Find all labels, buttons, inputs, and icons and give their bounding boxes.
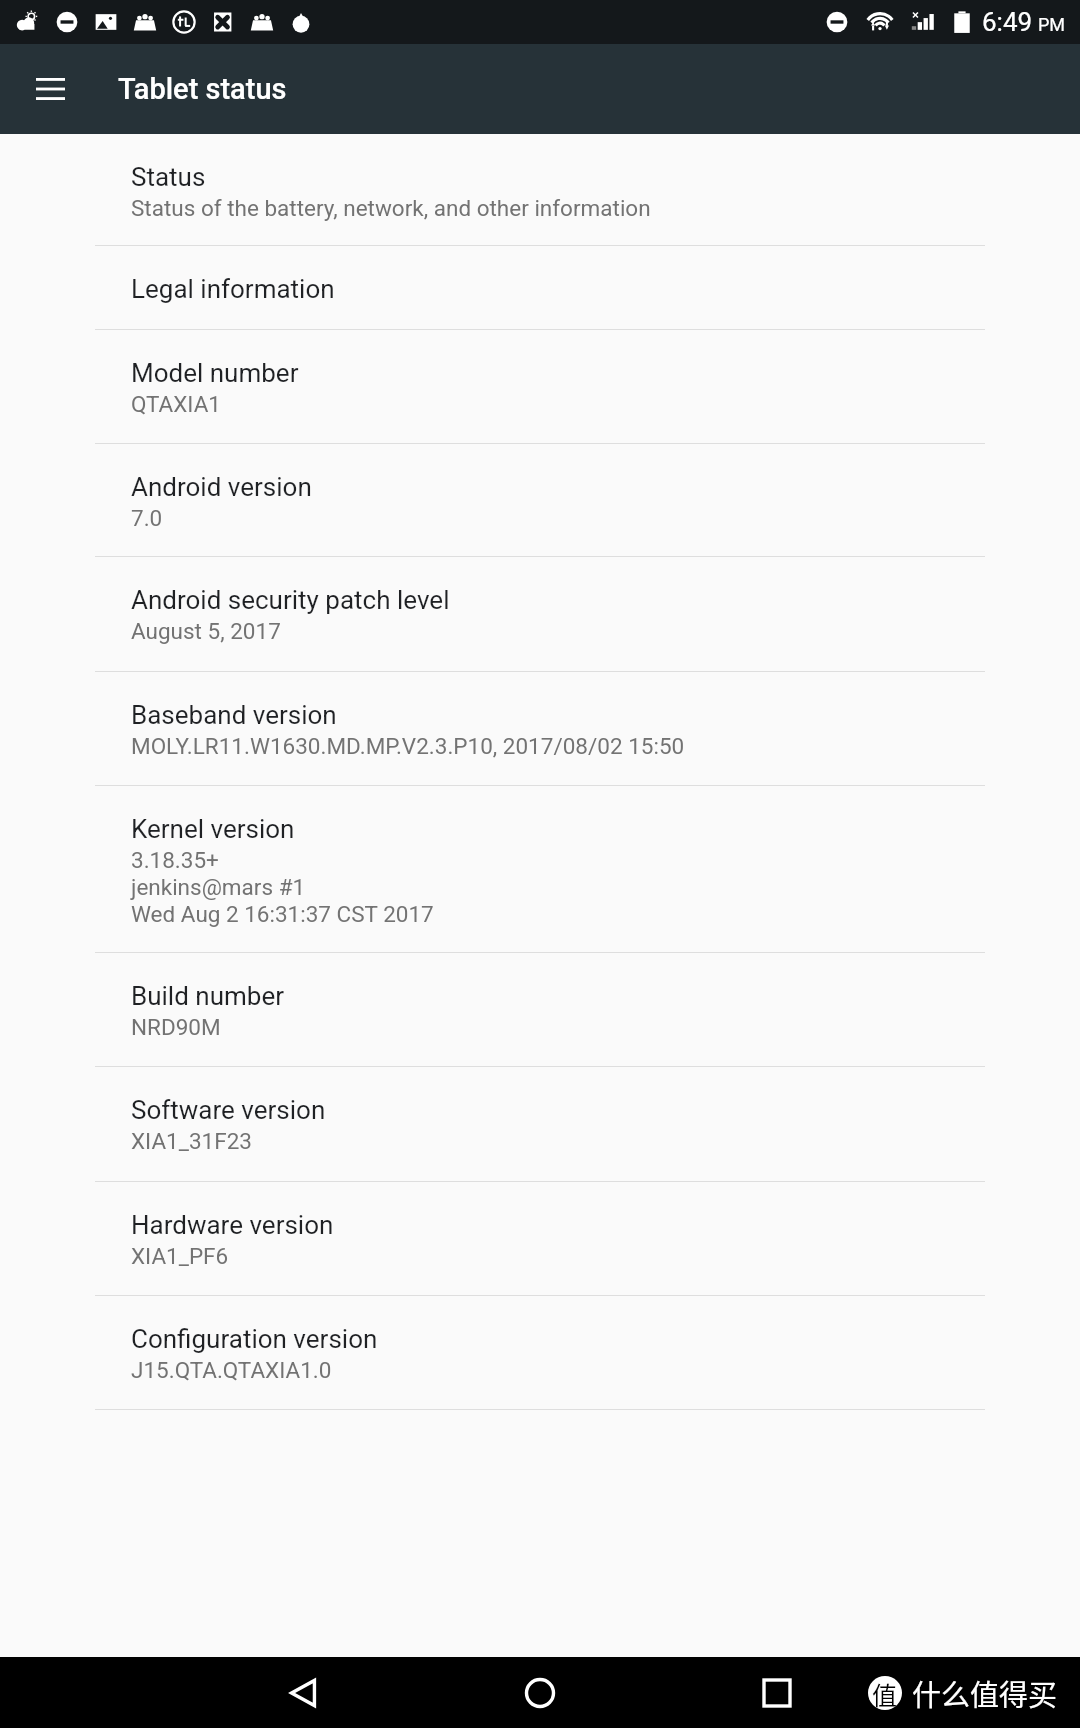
staticText: Model number (131, 358, 299, 388)
button[interactable]: Status (0, 134, 1080, 246)
button[interactable]: Home (509, 1662, 571, 1724)
staticText: Status (131, 162, 206, 192)
staticText: 7.0 (131, 505, 163, 531)
staticText: PM (1038, 14, 1066, 35)
staticText: Software version (131, 1095, 326, 1125)
button[interactable]: Hardware version (0, 1182, 1080, 1296)
button[interactable]: Kernel version (0, 786, 1080, 953)
button[interactable]: Back (272, 1662, 334, 1724)
button[interactable]: Model number (0, 330, 1080, 444)
staticText: J15.QTA.QTAXIA1.0 (131, 1357, 332, 1383)
staticText: 什么值得买 (912, 1672, 1058, 1714)
button[interactable]: Legal information (0, 246, 1080, 330)
staticText: Legal information (131, 274, 335, 304)
staticText: 值 (872, 1676, 898, 1710)
button[interactable]: Software version (0, 1067, 1080, 1182)
staticText: Kernel version (131, 814, 295, 844)
staticText: Build number (131, 981, 284, 1011)
staticText: Hardware version (131, 1210, 334, 1240)
staticText: Baseband version (131, 700, 337, 730)
staticText: 3.18.35+ (131, 847, 219, 873)
staticText: Android security patch level (131, 585, 450, 615)
button[interactable]: Build number (0, 953, 1080, 1067)
button[interactable]: Android security patch level (0, 557, 1080, 672)
staticText: Status of the battery, network, and othe… (131, 195, 651, 221)
staticText: XIA1_31F23 (131, 1128, 252, 1154)
staticText: MOLY.LR11.W1630.MD.MP.V2.3.P10, 2017/08/… (131, 733, 685, 759)
staticText: jenkins@mars #1 (131, 874, 306, 900)
staticText: Configuration version (131, 1324, 378, 1354)
staticText: XIA1_PF6 (131, 1243, 229, 1269)
staticText: NRD90M (131, 1014, 221, 1040)
staticText: 6:49 (982, 7, 1033, 37)
button[interactable]: Open navigation drawer (18, 57, 82, 121)
staticText: Wed Aug 2 16:31:37 CST 2017 (131, 901, 434, 927)
button[interactable]: Android version (0, 444, 1080, 557)
button[interactable]: Baseband version (0, 672, 1080, 786)
button[interactable]: Recent apps (746, 1662, 808, 1724)
staticText: Android version (131, 472, 312, 502)
staticText: QTAXIA1 (131, 391, 221, 417)
staticText: Tablet status (118, 72, 287, 106)
button[interactable]: Configuration version (0, 1296, 1080, 1410)
staticText: August 5, 2017 (131, 618, 281, 644)
